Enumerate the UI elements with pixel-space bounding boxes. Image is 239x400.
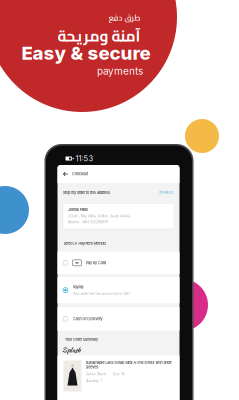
button[interactable]: Pay by Card (57, 252, 179, 274)
staticText: Quantity: 1 (85, 379, 101, 383)
staticText: PayPal (72, 285, 83, 289)
staticText: Easy & secure (21, 42, 150, 64)
staticText: payments (97, 65, 143, 77)
staticText: Size: 10 (112, 372, 124, 376)
staticText: Your order will be processed in USD (72, 292, 129, 295)
staticText: 11:53 (75, 154, 93, 163)
button[interactable]: PayPal (57, 277, 179, 303)
button[interactable]: CHANGE (157, 189, 173, 195)
button[interactable]: Checkout (57, 165, 179, 183)
staticText: Jeenal Patel (68, 207, 88, 212)
staticText: Select A Payment Method (63, 241, 105, 246)
staticText: CHANGE (158, 190, 173, 194)
staticText: آمنة ومريحة (57, 22, 140, 50)
staticText: Your Order Summary (65, 337, 98, 342)
staticText: Sustainable Lace Detail Midi A-line Dres… (85, 360, 171, 369)
staticText: Checkout (72, 172, 88, 176)
staticText: 3 Dubi., Mg, Adha, Al-Bim, Saudi Arabia (68, 214, 130, 218)
staticText: Mobile: +964 552200678 (68, 220, 108, 224)
staticText: Cash On Delivery (72, 317, 102, 321)
staticText: Colour: Black (85, 372, 106, 376)
staticText: Ship my order to this address (63, 190, 110, 195)
staticText: Splash (62, 345, 81, 355)
staticText: Pay by Card (86, 261, 106, 265)
staticText: طرق دفع (108, 10, 140, 25)
button[interactable]: Cash On Delivery (57, 307, 179, 330)
